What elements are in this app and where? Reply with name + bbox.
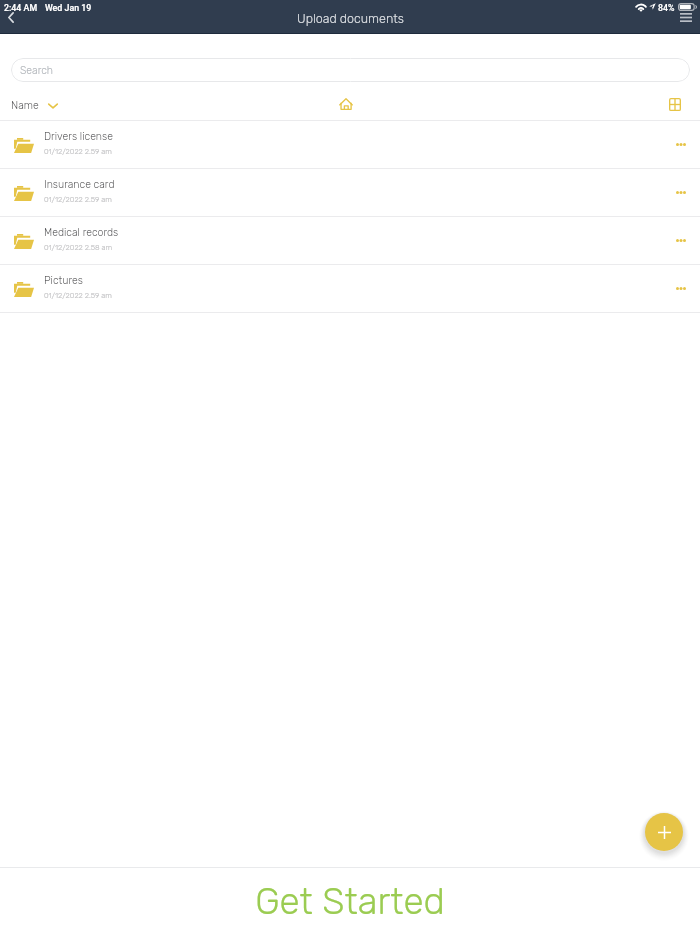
button[interactable]: Medical records (0, 217, 700, 265)
button[interactable]: Pictures (0, 265, 700, 313)
staticText: 2:44 AM (4, 3, 38, 13)
button[interactable]: More options (668, 227, 693, 252)
staticText: 84% (658, 3, 675, 13)
staticText: Upload documents (297, 11, 404, 26)
button[interactable]: Back (0, 5, 24, 29)
button[interactable]: More options (668, 275, 693, 300)
staticText: 01/12/2022 2.58 am (44, 243, 113, 252)
button[interactable]: Insurance card (0, 169, 700, 217)
button[interactable]: Search (11, 58, 690, 82)
button[interactable]: More options (668, 131, 693, 156)
button[interactable]: Home (333, 92, 359, 118)
button[interactable]: Menu (673, 4, 698, 29)
staticText: Medical records (44, 226, 119, 238)
staticText: Get Started (255, 880, 445, 924)
staticText: Wed Jan 19 (45, 3, 92, 13)
button[interactable]: Name (7, 96, 62, 114)
staticText: Insurance card (44, 178, 115, 190)
staticText: Drivers license (44, 130, 113, 142)
button[interactable]: Drivers license (0, 121, 700, 169)
staticText: Name (11, 99, 39, 111)
staticText: 01/12/2022 2.59 am (44, 147, 112, 156)
button[interactable]: Add (645, 813, 683, 851)
staticText: 01/12/2022 2.59 am (44, 291, 112, 300)
button[interactable]: Grid view (656, 92, 682, 118)
button[interactable]: More options (668, 179, 693, 204)
staticText: 01/12/2022 2.59 am (44, 195, 112, 204)
button[interactable]: Get Started (0, 868, 700, 934)
staticText: Pictures (44, 274, 83, 286)
staticText: Search (20, 64, 54, 76)
